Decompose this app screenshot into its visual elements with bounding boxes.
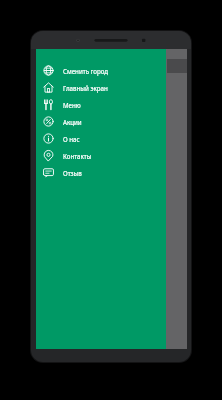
staticText: Акции <box>63 118 82 126</box>
staticText: Контакты <box>63 152 92 160</box>
button[interactable]: Отзыв <box>36 164 166 181</box>
button[interactable]: Сменить город <box>36 62 166 79</box>
staticText: Меню <box>63 101 81 109</box>
button[interactable]: Главный экран <box>36 79 166 96</box>
staticText: О нас <box>63 135 80 143</box>
button[interactable]: О нас <box>36 130 166 147</box>
button[interactable]: Меню <box>36 96 166 113</box>
staticText: Отзыв <box>63 169 82 177</box>
staticText: Сменить город <box>63 67 109 75</box>
button[interactable]: Акции <box>36 113 166 130</box>
button[interactable]: Контакты <box>36 147 166 164</box>
staticText: Главный экран <box>63 84 108 92</box>
